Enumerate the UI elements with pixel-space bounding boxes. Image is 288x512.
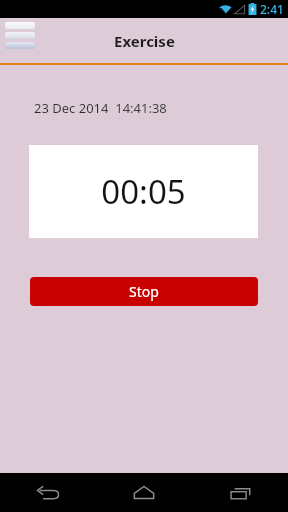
staticText: Exercise — [114, 31, 175, 51]
staticText: 00:05 — [101, 169, 186, 214]
button[interactable]: Stop — [30, 277, 258, 306]
staticText: Stop — [129, 282, 159, 301]
button[interactable]: Recent apps — [192, 473, 288, 512]
button[interactable]: Back — [0, 473, 96, 512]
button[interactable]: Menu — [5, 22, 38, 54]
button[interactable]: Home — [96, 473, 192, 512]
staticText: 2:41 — [260, 1, 284, 17]
staticText: 23 Dec 2014 14:41:38 — [34, 99, 167, 117]
